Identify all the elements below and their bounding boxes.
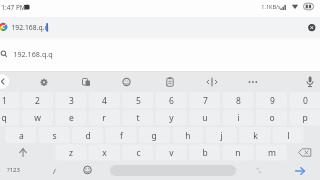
button[interactable]: p bbox=[288, 109, 320, 126]
staticText: u bbox=[202, 112, 208, 124]
button[interactable] bbox=[162, 74, 178, 90]
button[interactable]: f bbox=[104, 127, 138, 144]
staticText: n bbox=[235, 147, 241, 159]
staticText: h bbox=[185, 130, 191, 142]
button[interactable]: l bbox=[271, 127, 305, 144]
staticText: 0 bbox=[303, 95, 308, 107]
button[interactable] bbox=[78, 74, 94, 90]
button[interactable]: 8 bbox=[221, 92, 255, 109]
button[interactable]: w bbox=[20, 109, 54, 126]
button[interactable]: z bbox=[54, 144, 88, 161]
button[interactable]: 3 bbox=[54, 92, 88, 109]
staticText: e bbox=[69, 112, 74, 124]
staticText: j bbox=[220, 130, 223, 142]
staticText: 6 bbox=[169, 95, 174, 107]
staticText: ?123 bbox=[7, 166, 20, 174]
button[interactable] bbox=[0, 17, 320, 38]
button[interactable] bbox=[119, 74, 135, 90]
staticText: f bbox=[120, 130, 123, 142]
button[interactable]: c bbox=[121, 144, 155, 161]
staticText: q bbox=[1, 112, 7, 124]
staticText: i bbox=[237, 112, 240, 124]
button[interactable]: n bbox=[221, 144, 255, 161]
staticText: k bbox=[253, 130, 258, 142]
staticText: 192.168.q.q bbox=[11, 23, 49, 32]
button[interactable]: / bbox=[37, 163, 71, 178]
staticText: 4 bbox=[102, 95, 107, 107]
staticText: 1:47 PM bbox=[1, 3, 26, 12]
button[interactable]: 6 bbox=[154, 92, 188, 109]
staticText: x bbox=[102, 147, 107, 159]
button[interactable]: x bbox=[87, 144, 121, 161]
staticText: y bbox=[169, 112, 174, 124]
staticText: 9 bbox=[270, 95, 275, 107]
button[interactable]: k bbox=[238, 127, 272, 144]
staticText: r bbox=[102, 112, 106, 124]
staticText: 7 bbox=[203, 95, 208, 107]
button[interactable]: d bbox=[71, 127, 105, 144]
staticText: 5 bbox=[136, 95, 141, 107]
staticText: g bbox=[151, 130, 157, 142]
button[interactable] bbox=[204, 74, 220, 90]
staticText: s bbox=[52, 130, 57, 142]
staticText: 1 bbox=[2, 95, 7, 107]
staticText: 192.168.q.q bbox=[13, 49, 53, 59]
button[interactable]: 192.168.q.q bbox=[12, 47, 54, 61]
button[interactable]: 1 bbox=[0, 92, 21, 109]
button[interactable]: 5 bbox=[121, 92, 155, 109]
button[interactable]: 0 bbox=[288, 92, 320, 109]
staticText: l bbox=[287, 130, 290, 142]
button[interactable] bbox=[36, 74, 52, 90]
staticText: m bbox=[268, 147, 276, 159]
button[interactable]: g bbox=[137, 127, 171, 144]
button[interactable] bbox=[296, 162, 314, 178]
staticText: 3 bbox=[69, 95, 74, 107]
button[interactable] bbox=[297, 145, 315, 160]
staticText: t bbox=[136, 112, 140, 124]
staticText: d bbox=[85, 130, 91, 142]
staticText: c bbox=[136, 147, 141, 159]
button[interactable]: m bbox=[255, 144, 289, 161]
button[interactable]: ?123 bbox=[2, 164, 24, 176]
button[interactable]: h bbox=[171, 127, 205, 144]
button[interactable] bbox=[304, 21, 318, 34]
staticText: 8 bbox=[236, 95, 241, 107]
button[interactable]: s bbox=[37, 127, 71, 144]
button[interactable]: b bbox=[188, 144, 222, 161]
button[interactable] bbox=[98, 163, 248, 178]
button[interactable]: 4 bbox=[87, 92, 121, 109]
staticText: 1.1KB/s bbox=[261, 3, 281, 10]
button[interactable]: q bbox=[0, 109, 21, 126]
button[interactable]: a bbox=[4, 127, 38, 144]
button[interactable]: j bbox=[204, 127, 238, 144]
button[interactable]: 7 bbox=[188, 92, 222, 109]
staticText: z bbox=[69, 147, 73, 159]
button[interactable]: y bbox=[154, 109, 188, 126]
button[interactable]: e bbox=[54, 109, 88, 126]
button[interactable]: v bbox=[154, 144, 188, 161]
staticText: a bbox=[19, 130, 24, 142]
staticText: 2 bbox=[35, 95, 40, 107]
button[interactable]: o bbox=[255, 109, 289, 126]
button[interactable] bbox=[302, 74, 318, 90]
button[interactable]: 9 bbox=[255, 92, 289, 109]
staticText: b bbox=[202, 147, 208, 159]
staticText: v bbox=[169, 147, 174, 159]
button[interactable] bbox=[14, 145, 32, 160]
button[interactable]: 2 bbox=[20, 92, 54, 109]
staticText: / bbox=[53, 166, 56, 176]
button[interactable]: i bbox=[221, 109, 255, 126]
button[interactable] bbox=[79, 162, 96, 178]
staticText: p bbox=[302, 112, 308, 124]
button[interactable] bbox=[245, 74, 261, 90]
button[interactable]: r bbox=[87, 109, 121, 126]
button[interactable]: u bbox=[188, 109, 222, 126]
staticText: o bbox=[269, 112, 275, 124]
button[interactable]: t bbox=[121, 109, 155, 126]
staticText: w bbox=[34, 112, 41, 124]
